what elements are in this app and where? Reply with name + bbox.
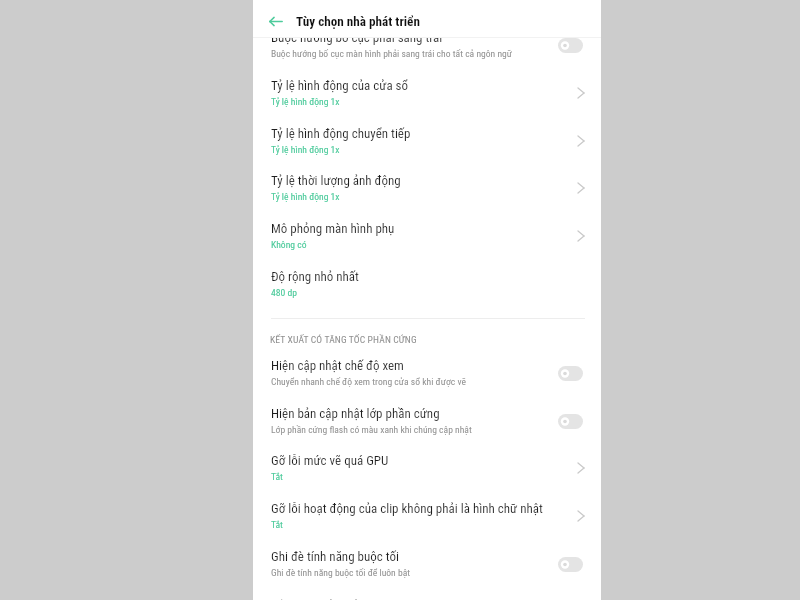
staticText: Gỡ lỗi hoạt động của clip không phải là … [271, 501, 543, 516]
button[interactable]: Hiện cập nhật chế độ xem [253, 344, 601, 392]
staticText: Mô phỏng màn hình phụ [271, 221, 395, 236]
staticText: Tỷ lệ hình động chuyển tiếp [271, 126, 411, 141]
staticText: Buộc hướng bố cục màn hình phải sang trá… [271, 48, 513, 59]
staticText: Gỡ lỗi mức vẽ quá GPU [271, 453, 389, 468]
button[interactable]: Tỷ lệ hình động chuyển tiếp [253, 112, 601, 160]
staticText: Tùy chọn nhà phát triển [296, 14, 420, 29]
staticText: Tỷ lệ hình động 1x [271, 191, 340, 202]
staticText: Bắt buộc kết xuất GPU [271, 598, 386, 600]
staticText: Hiện bản cập nhật lớp phần cứng [271, 406, 440, 421]
staticText: Lớp phần cứng flash có màu xanh khi chún… [271, 424, 472, 435]
button[interactable]: Buộc hướng bố cục phải sang trái [253, 16, 601, 64]
button[interactable]: Ghi đè tính năng buộc tối [253, 535, 601, 583]
staticText: Không có [271, 239, 307, 250]
staticText: Tỷ lệ hình động 1x [271, 144, 340, 155]
staticText: Tắt [271, 519, 283, 530]
button[interactable]: Gỡ lỗi mức vẽ quá GPU [253, 439, 601, 487]
staticText: Hiện cập nhật chế độ xem [271, 358, 404, 373]
button[interactable]: Tỷ lệ thời lượng ảnh động [253, 159, 601, 207]
staticText: Tỷ lệ hình động của cửa sổ [271, 78, 409, 93]
staticText: Tỷ lệ thời lượng ảnh động [271, 173, 401, 188]
button[interactable]: Back [260, 5, 292, 37]
staticText: KẾT XUẤT CÓ TĂNG TỐC PHẦN CỨNG [270, 334, 417, 345]
staticText: Độ rộng nhỏ nhất [271, 269, 359, 284]
staticText: 480 dp [271, 287, 297, 298]
button[interactable]: Độ rộng nhỏ nhất [253, 255, 601, 303]
staticText: Buộc hướng bố cục phải sang trái [271, 30, 443, 45]
staticText: Chuyển nhanh chế độ xem trong cửa sổ khi… [271, 376, 466, 387]
staticText: Ghi đè tính năng buộc tối [271, 549, 400, 564]
button[interactable]: Tỷ lệ hình động của cửa sổ [253, 64, 601, 112]
staticText: Ghi đè tính năng buộc tối để luôn bật [271, 567, 411, 578]
button[interactable]: Gỡ lỗi hoạt động của clip không phải là … [253, 487, 601, 535]
staticText: Tỷ lệ hình động 1x [271, 96, 340, 107]
button[interactable]: Hiện bản cập nhật lớp phần cứng [253, 392, 601, 440]
button[interactable]: Mô phỏng màn hình phụ [253, 207, 601, 255]
staticText: Tắt [271, 471, 283, 482]
